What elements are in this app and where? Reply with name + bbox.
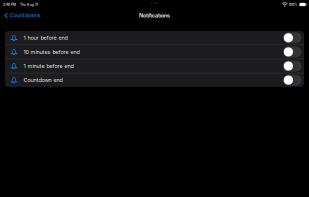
staticText: 3:48 PM: [3, 2, 16, 7]
staticText: Thu Aug 31: [20, 2, 38, 7]
button[interactable]: 1 minute before end: [5, 59, 304, 73]
staticText: 100%: [289, 2, 298, 7]
button[interactable]: Countdowns: [0, 9, 45, 22]
staticText: 1 hour before end: [23, 34, 67, 41]
staticText: 10 minutes before end: [23, 49, 79, 55]
staticText: Countdown end: [23, 77, 62, 83]
button[interactable]: Multitasking Controls: [142, 0, 166, 9]
button[interactable]: 10 minutes before end: [5, 45, 304, 59]
staticText: Notifications: [139, 12, 170, 19]
button[interactable]: Countdown end: [5, 73, 304, 87]
staticText: 1 minute before end: [23, 63, 73, 69]
button[interactable]: 1 hour before end: [5, 31, 304, 45]
staticText: Countdowns: [10, 12, 41, 19]
